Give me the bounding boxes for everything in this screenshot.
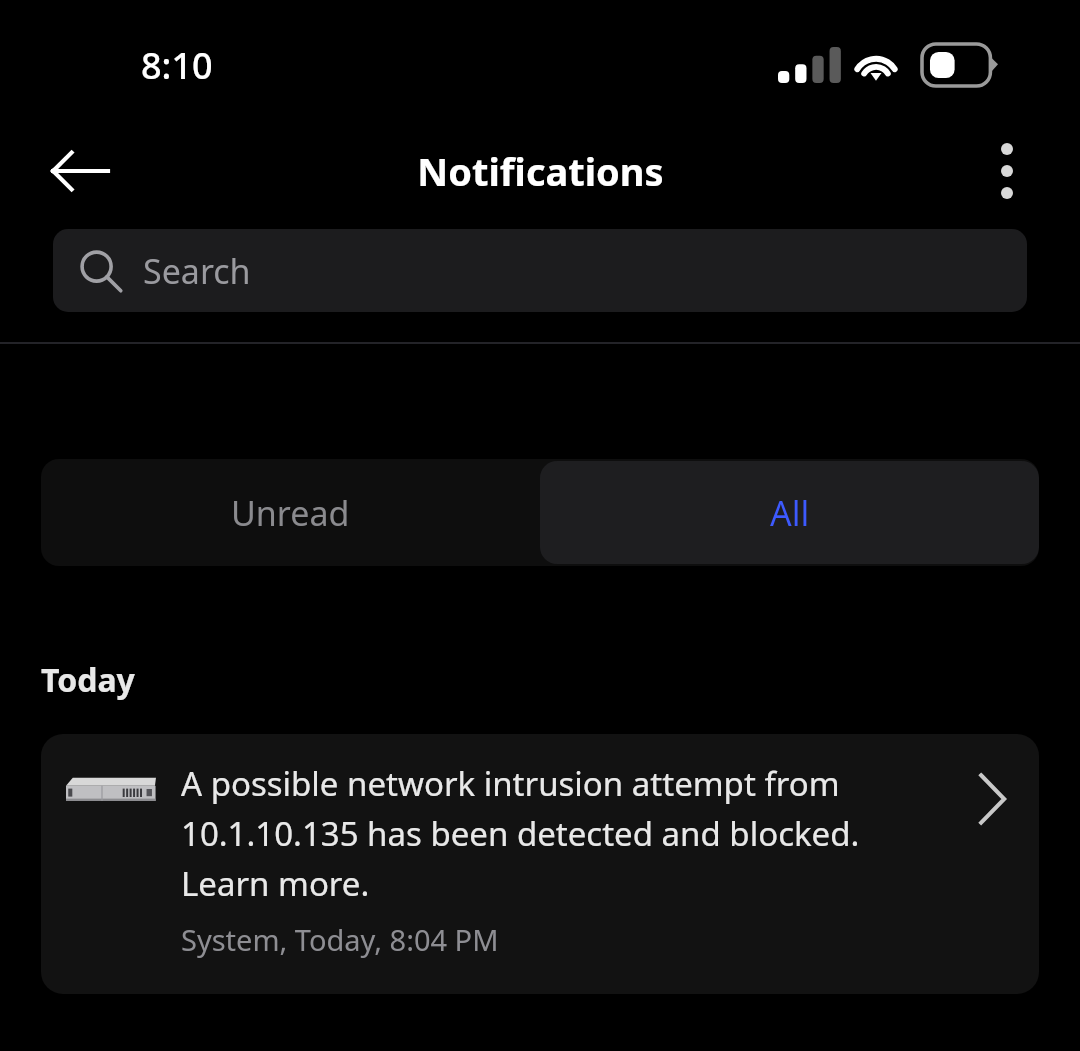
button[interactable]: Back — [36, 131, 124, 211]
button[interactable]: Unread — [41, 459, 540, 566]
staticText: Notifications — [417, 145, 664, 197]
button[interactable]: All — [540, 461, 1039, 564]
staticText: System, Today, 8:04 PM — [181, 920, 499, 959]
staticText: 8:10 — [141, 41, 213, 90]
staticText: Search — [143, 248, 251, 294]
staticText: A possible network intrusion attempt fro… — [181, 761, 936, 906]
staticText: Today — [41, 658, 135, 702]
staticText: All — [770, 490, 810, 536]
button[interactable]: Search — [53, 229, 1027, 312]
button[interactable]: A possible network intrusion attempt fro… — [41, 734, 1039, 994]
staticText: Unread — [231, 490, 350, 536]
button[interactable]: More options — [972, 131, 1042, 211]
